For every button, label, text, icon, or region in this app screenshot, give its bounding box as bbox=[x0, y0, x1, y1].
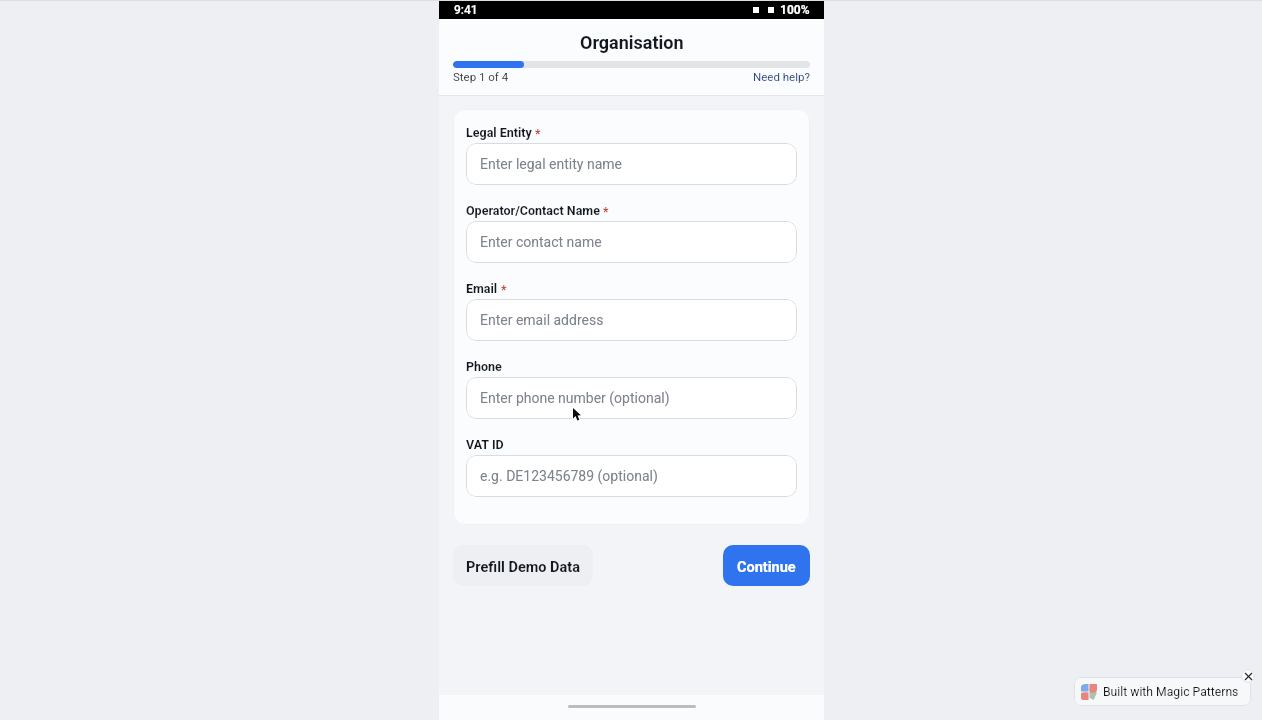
button[interactable]: Continue bbox=[723, 545, 810, 586]
button[interactable]: Enter contact name bbox=[466, 221, 797, 263]
staticText: * bbox=[532, 127, 541, 141]
staticText: Step 1 of 4 bbox=[453, 70, 509, 83]
button[interactable]: Close badge bbox=[1241, 669, 1255, 683]
staticText: Operator/Contact Name bbox=[466, 203, 600, 218]
button[interactable]: Enter phone number (optional) bbox=[466, 377, 797, 419]
staticText: Enter contact name bbox=[480, 234, 602, 250]
button[interactable]: e.g. DE123456789 (optional) bbox=[466, 455, 797, 497]
staticText: Enter legal entity name bbox=[480, 156, 622, 172]
staticText: Email bbox=[466, 281, 498, 296]
button[interactable]: Built with Magic Patterns bbox=[1074, 677, 1251, 706]
staticText: * bbox=[600, 205, 609, 219]
button[interactable]: Enter legal entity name bbox=[466, 143, 797, 185]
staticText: Prefill Demo Data bbox=[466, 559, 580, 576]
staticText: Enter email address bbox=[480, 312, 604, 328]
button[interactable]: Enter email address bbox=[466, 299, 797, 341]
staticText: e.g. DE123456789 (optional) bbox=[480, 468, 658, 484]
staticText: 9:41 bbox=[454, 3, 478, 17]
staticText: VAT ID bbox=[466, 437, 504, 452]
button[interactable]: Need help? bbox=[753, 70, 810, 83]
button[interactable]: Prefill Demo Data bbox=[453, 545, 593, 586]
staticText: Need help? bbox=[753, 70, 810, 83]
staticText: 100% bbox=[780, 3, 810, 17]
staticText: * bbox=[498, 283, 507, 297]
staticText: Continue bbox=[737, 559, 796, 576]
staticText: Phone bbox=[466, 359, 502, 374]
staticText: Built with Magic Patterns bbox=[1103, 685, 1239, 699]
staticText: Organisation bbox=[580, 32, 684, 53]
staticText: Enter phone number (optional) bbox=[480, 390, 670, 406]
staticText: Legal Entity bbox=[466, 125, 532, 140]
